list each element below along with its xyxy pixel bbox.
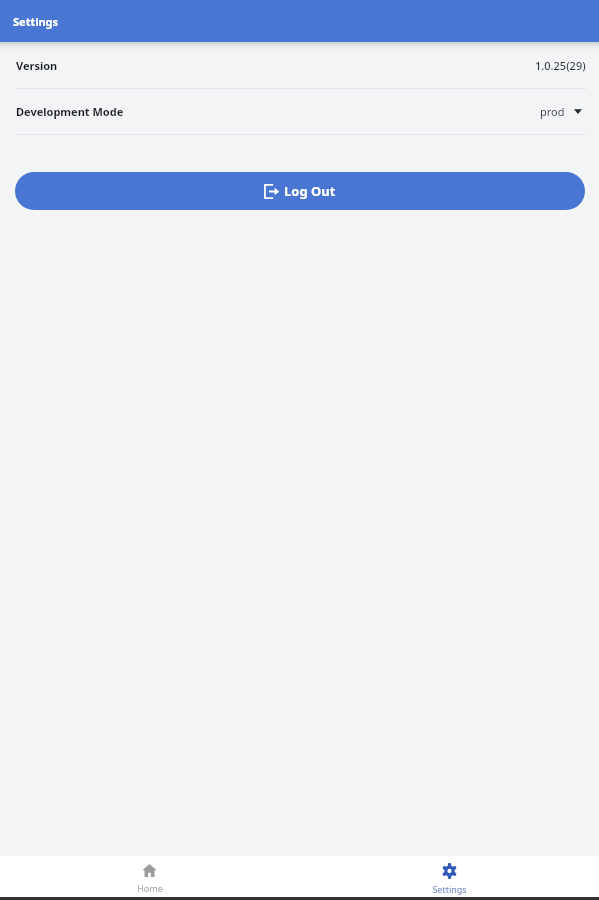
button[interactable]: Select environment, currently prod	[540, 104, 586, 119]
button[interactable]: Development Mode	[0, 89, 599, 134]
staticText: prod	[540, 104, 565, 119]
button[interactable]: Home	[0, 856, 299, 897]
staticText: Settings	[432, 883, 467, 895]
staticText: Version	[16, 58, 58, 73]
staticText: Log Out	[284, 182, 336, 200]
staticText: Development Mode	[16, 104, 124, 119]
staticText: Home	[137, 882, 163, 894]
button[interactable]: Settings	[299, 856, 599, 897]
button[interactable]: Version	[0, 42, 599, 88]
staticText: 1.0.25(29)	[535, 58, 586, 73]
staticText: Settings	[13, 14, 59, 29]
button[interactable]: Log Out	[15, 172, 585, 210]
